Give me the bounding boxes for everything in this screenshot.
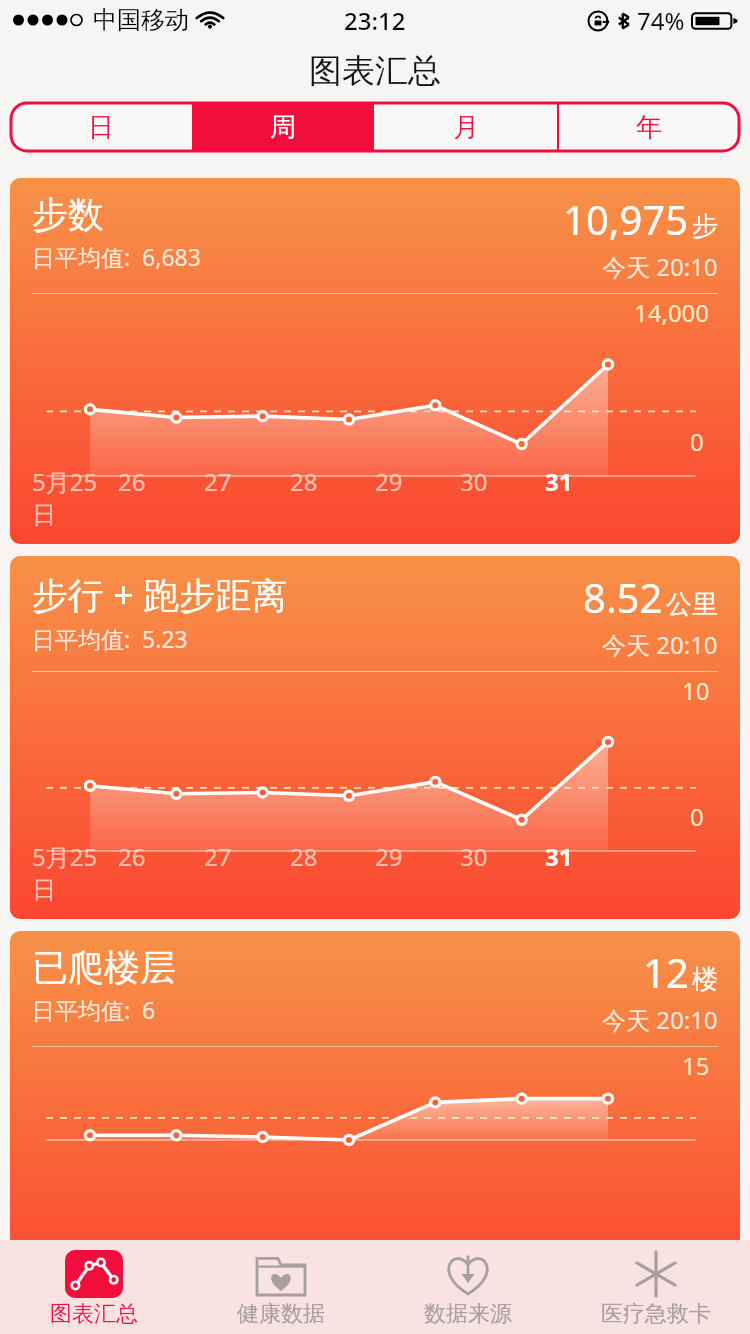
- staticText: 图表汇总: [50, 1300, 138, 1328]
- staticText: 31: [545, 465, 573, 498]
- staticText: 健康数据: [237, 1300, 325, 1328]
- staticText: 0: [690, 800, 704, 833]
- button[interactable]: 日: [10, 102, 192, 152]
- staticText: 步数: [32, 192, 104, 237]
- staticText: 5月25日: [32, 465, 118, 530]
- staticText: 31: [545, 840, 573, 873]
- staticText: 12: [643, 945, 689, 999]
- staticText: 今天 20:10: [602, 1003, 718, 1036]
- staticText: 图表汇总: [309, 50, 441, 92]
- button[interactable]: 年: [557, 102, 740, 152]
- staticText: 医疗急救卡: [601, 1300, 711, 1328]
- staticText: 10: [682, 674, 710, 707]
- staticText: 数据来源: [424, 1300, 512, 1328]
- staticText: 年: [636, 111, 662, 144]
- staticText: 27: [204, 465, 232, 498]
- staticText: 15: [682, 1049, 710, 1082]
- button[interactable]: 周: [192, 102, 374, 152]
- staticText: 23:12: [344, 4, 406, 37]
- staticText: 日平均值: 6: [32, 994, 156, 1025]
- staticText: 中国移动: [93, 5, 189, 35]
- staticText: 步: [692, 210, 718, 243]
- staticText: 29: [375, 840, 403, 873]
- staticText: 今天 20:10: [602, 628, 718, 661]
- staticText: 已爬楼层: [32, 945, 176, 990]
- staticText: 30: [460, 840, 488, 873]
- staticText: 14,000: [634, 296, 710, 329]
- button[interactable]: 月: [374, 102, 557, 152]
- staticText: 日平均值: 5.23: [32, 623, 188, 654]
- button[interactable]: 步数: [10, 178, 740, 544]
- staticText: 74%: [637, 4, 685, 37]
- staticText: 今天 20:10: [602, 250, 718, 283]
- staticText: 5月25日: [32, 840, 118, 905]
- button[interactable]: 数据来源: [374, 1240, 562, 1334]
- staticText: 公里: [666, 588, 718, 621]
- staticText: 28: [290, 465, 318, 498]
- staticText: 步行 + 跑步距离: [32, 570, 288, 619]
- staticText: 0: [690, 425, 704, 458]
- staticText: 28: [290, 840, 318, 873]
- staticText: 29: [375, 465, 403, 498]
- staticText: 26: [118, 840, 146, 873]
- button[interactable]: 图表汇总: [0, 1240, 187, 1334]
- staticText: 27: [204, 840, 232, 873]
- staticText: 楼: [692, 963, 718, 996]
- button[interactable]: 健康数据: [187, 1240, 374, 1334]
- staticText: 月: [453, 111, 479, 144]
- staticText: 日平均值: 6,683: [32, 241, 201, 272]
- staticText: 8.52: [583, 570, 663, 624]
- staticText: 30: [460, 465, 488, 498]
- staticText: 周: [270, 111, 296, 144]
- button[interactable]: 医疗急救卡: [562, 1240, 750, 1334]
- button[interactable]: 步行 + 跑步距离: [10, 556, 740, 919]
- staticText: 10,975: [563, 192, 689, 246]
- button[interactable]: 已爬楼层: [10, 931, 740, 1294]
- staticText: 26: [118, 465, 146, 498]
- staticText: 日: [88, 111, 114, 144]
